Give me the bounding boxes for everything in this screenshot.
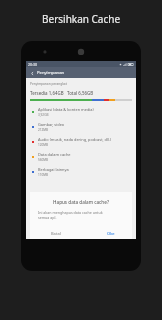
staticText: Aplikasi (data & konten media) — [38, 107, 94, 112]
staticText: Hapus data dalam cache? — [30, 199, 132, 205]
staticText: Ini akan menghapus data cache untuk semu… — [38, 210, 110, 220]
staticText: 3,92GB — [38, 113, 49, 117]
staticText: Berbagai lainnya — [38, 167, 69, 172]
button[interactable]: Oke — [104, 229, 118, 238]
staticText: Oke — [107, 231, 115, 236]
button[interactable]: Data dalam cache — [26, 149, 136, 164]
staticText: 110MB — [38, 173, 49, 177]
staticText: Data dalam cache — [38, 152, 71, 157]
button[interactable]: Aplikasi (data & konten media) — [26, 104, 136, 119]
button[interactable]: Berbagai lainnya — [26, 164, 136, 179]
staticText: Penyimpanan — [37, 70, 65, 76]
staticText: 20:30 — [28, 62, 37, 67]
staticText: Bersihkan Cache — [42, 12, 121, 26]
staticText: Batal — [51, 231, 61, 236]
button[interactable]: Gambar, video — [26, 119, 136, 134]
staticText: Tersedia 1,64GB — [30, 90, 64, 96]
staticText: Total 6,56GB — [67, 90, 94, 96]
button[interactable]: Audio (musik, nada dering, podcast, dll.… — [26, 134, 136, 149]
staticText: 560MB — [38, 158, 49, 162]
button[interactable]: Batal — [48, 229, 64, 238]
staticText: Penyimpanan perangkat — [30, 82, 67, 86]
staticText: 120MB — [38, 143, 49, 147]
staticText: Gambar, video — [38, 122, 65, 127]
button[interactable]: Back — [26, 67, 136, 78]
staticText: 212MB — [38, 128, 49, 132]
button[interactable]: Back — [28, 69, 36, 77]
staticText: Audio (musik, nada dering, podcast, dll.… — [38, 137, 112, 142]
